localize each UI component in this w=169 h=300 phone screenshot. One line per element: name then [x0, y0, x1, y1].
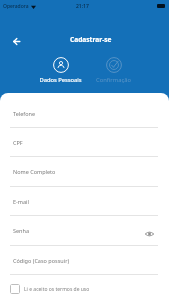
staticText: Código (Caso possuir) [13, 257, 70, 264]
button[interactable]: Dados Pessoais [34, 57, 87, 84]
button[interactable]: Nome Completo [0, 156, 169, 185]
staticText: 21:17 [76, 3, 89, 10]
button[interactable]: Telefone [0, 98, 169, 127]
button[interactable]: Toggle password visibility [144, 228, 155, 239]
staticText: Telefone [13, 110, 36, 117]
staticText: Operadora [3, 3, 29, 10]
button[interactable]: Senha [0, 215, 169, 244]
button[interactable]: Confirmação [87, 57, 140, 84]
staticText: Confirmação [96, 76, 131, 84]
staticText: CPF [13, 139, 23, 146]
staticText: Nome Completo [13, 168, 56, 175]
button[interactable]: Li e aceito os termos de uso [10, 284, 90, 294]
staticText: Cadastrar-se [70, 35, 112, 44]
staticText: Dados Pessoais [39, 76, 82, 84]
button[interactable]: Back [8, 33, 25, 50]
button[interactable]: E-mail [0, 186, 169, 215]
staticText: Li e aceito os termos de uso [24, 286, 90, 293]
staticText: E-mail [13, 198, 29, 205]
staticText: Senha [13, 227, 30, 234]
button[interactable]: CPF [0, 127, 169, 156]
button[interactable]: Código (Caso possuir) [0, 245, 169, 274]
